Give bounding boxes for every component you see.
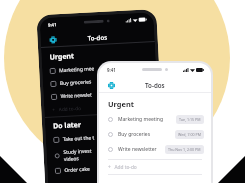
button[interactable]: App menu [105,79,117,91]
staticText: Thu Nov 1, 2:00 PM [168,147,201,152]
button[interactable]: Buy groceries [108,127,204,142]
staticText: Write newslet [60,91,93,100]
staticText: Wed, 7:00 PM [178,132,201,137]
staticText: Order cake [64,166,91,174]
staticText: Take out the t [63,134,95,143]
button[interactable]: Marketing mee [50,59,153,78]
button[interactable]: Buy groceries [51,72,154,91]
button[interactable]: App menu [46,33,59,46]
staticText: Marketing mee [59,65,94,74]
staticText: Urgent [49,51,75,63]
staticText: Buy groceries [118,131,151,138]
staticText: Study invest videos [63,148,92,162]
staticText: Do later [53,120,81,132]
staticText: + Add to-do [108,164,137,171]
staticText: Write newsletter [118,146,157,153]
staticText: Urgent [108,99,134,109]
staticText: + Add to-do [52,105,81,113]
button[interactable]: Write newsletter [108,142,204,157]
staticText: 9:41 [107,67,116,73]
button[interactable]: Marketing meeting [108,112,204,127]
staticText: 9:41 [48,21,57,28]
staticText: To-dos [87,33,108,42]
staticText: Tue, 1:15 PM [179,117,201,122]
button[interactable]: Write newslet [51,85,155,104]
button[interactable]: Take out the t [53,128,157,146]
button[interactable]: Order cake [55,159,159,177]
staticText: Marketing meeting [118,116,164,123]
button[interactable]: Study invest videos [54,141,158,164]
staticText: To-dos [145,81,165,89]
button[interactable]: + Add to-do [108,160,211,174]
button[interactable]: + Add to-do [52,98,158,116]
staticText: Buy groceries [60,78,92,87]
